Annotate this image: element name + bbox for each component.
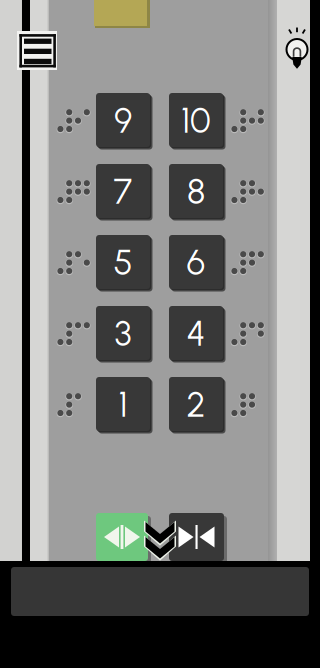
staticText: 8 (187, 171, 205, 212)
button[interactable]: 4 (169, 306, 226, 363)
button[interactable]: 5 (96, 235, 153, 292)
staticText: 7 (113, 171, 132, 212)
staticText: 10 (181, 100, 211, 141)
staticText: 2 (186, 384, 205, 425)
button[interactable]: 8 (169, 164, 226, 221)
button[interactable]: 3 (96, 306, 153, 363)
button[interactable]: Close doors (169, 513, 227, 564)
button[interactable]: 7 (96, 164, 153, 221)
button[interactable]: Floor directory (17, 31, 57, 70)
button[interactable]: Open doors (96, 513, 151, 564)
button[interactable]: 9 (96, 93, 153, 150)
button[interactable]: 2 (169, 377, 226, 434)
staticText: 6 (186, 242, 205, 283)
staticText: 9 (114, 100, 132, 141)
button[interactable]: Car light indicator (284, 20, 311, 70)
button[interactable]: 1 (96, 377, 153, 434)
staticText: 1 (118, 384, 127, 425)
button[interactable]: 10 (169, 93, 226, 150)
staticText: 4 (186, 313, 205, 354)
button[interactable]: 6 (169, 235, 226, 292)
staticText: 3 (114, 313, 131, 354)
staticText: 5 (113, 242, 132, 283)
